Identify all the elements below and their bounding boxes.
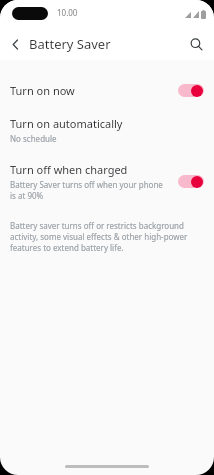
staticText: Turn off when charged bbox=[10, 162, 128, 177]
button[interactable]: Toggle bbox=[178, 175, 204, 188]
staticText: No schedule bbox=[10, 133, 57, 144]
button[interactable]: Back bbox=[4, 33, 26, 55]
staticText: Battery Saver turns off when your phone … bbox=[10, 179, 170, 201]
button[interactable]: Turn on now bbox=[0, 74, 214, 107]
staticText: Battery Saver bbox=[29, 35, 111, 53]
button[interactable]: Search bbox=[185, 33, 207, 55]
staticText: 10.00 bbox=[57, 7, 78, 18]
button[interactable]: Turn on automatically bbox=[0, 107, 214, 153]
staticText: Turn on automatically bbox=[10, 116, 123, 131]
staticText: Turn on now bbox=[10, 83, 75, 98]
button[interactable]: Toggle bbox=[178, 84, 204, 97]
staticText: Battery saver turns off or restricts bac… bbox=[10, 220, 206, 253]
button[interactable]: Turn off when charged bbox=[0, 153, 214, 210]
